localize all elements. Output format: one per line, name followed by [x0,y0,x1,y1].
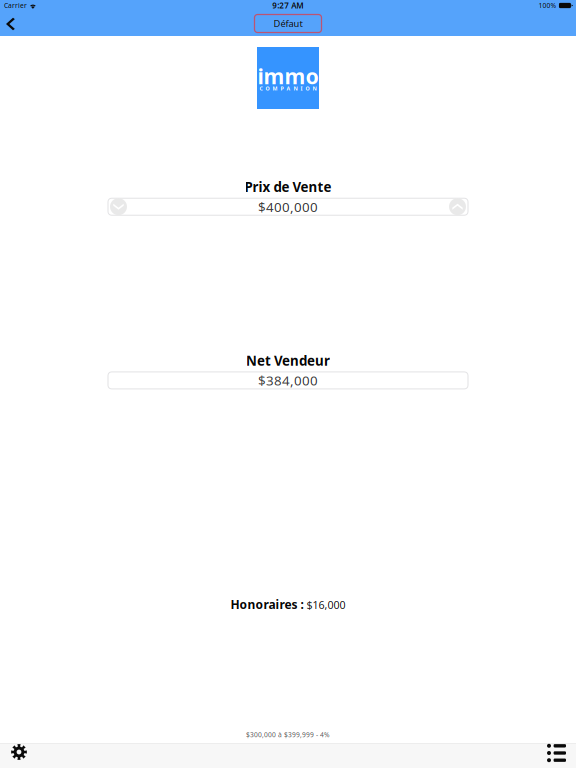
button[interactable]: Back [0,13,25,34]
staticText: immo [257,62,318,90]
staticText: Carrier [4,1,27,10]
staticText: 100% [538,1,556,10]
staticText: Net Vendeur [246,352,330,369]
button[interactable]: Settings [0,744,38,768]
staticText: 9:27 AM [272,0,303,11]
staticText: $300,000 à $399,999 - 4% [246,730,330,739]
staticText: Honoraires : [230,596,303,612]
button[interactable]: List [537,744,576,768]
staticText: C O M P A N I O N [259,85,316,92]
staticText: Prix de Vente [244,178,331,196]
staticText: $400,000 [258,198,318,216]
staticText: Défaut [273,17,302,30]
staticText: $384,000 [258,372,318,389]
button[interactable]: Défaut [254,14,321,32]
staticText: $16,000 [306,598,345,612]
button[interactable]: Increase price [449,198,466,215]
button[interactable]: Decrease price [110,198,127,215]
